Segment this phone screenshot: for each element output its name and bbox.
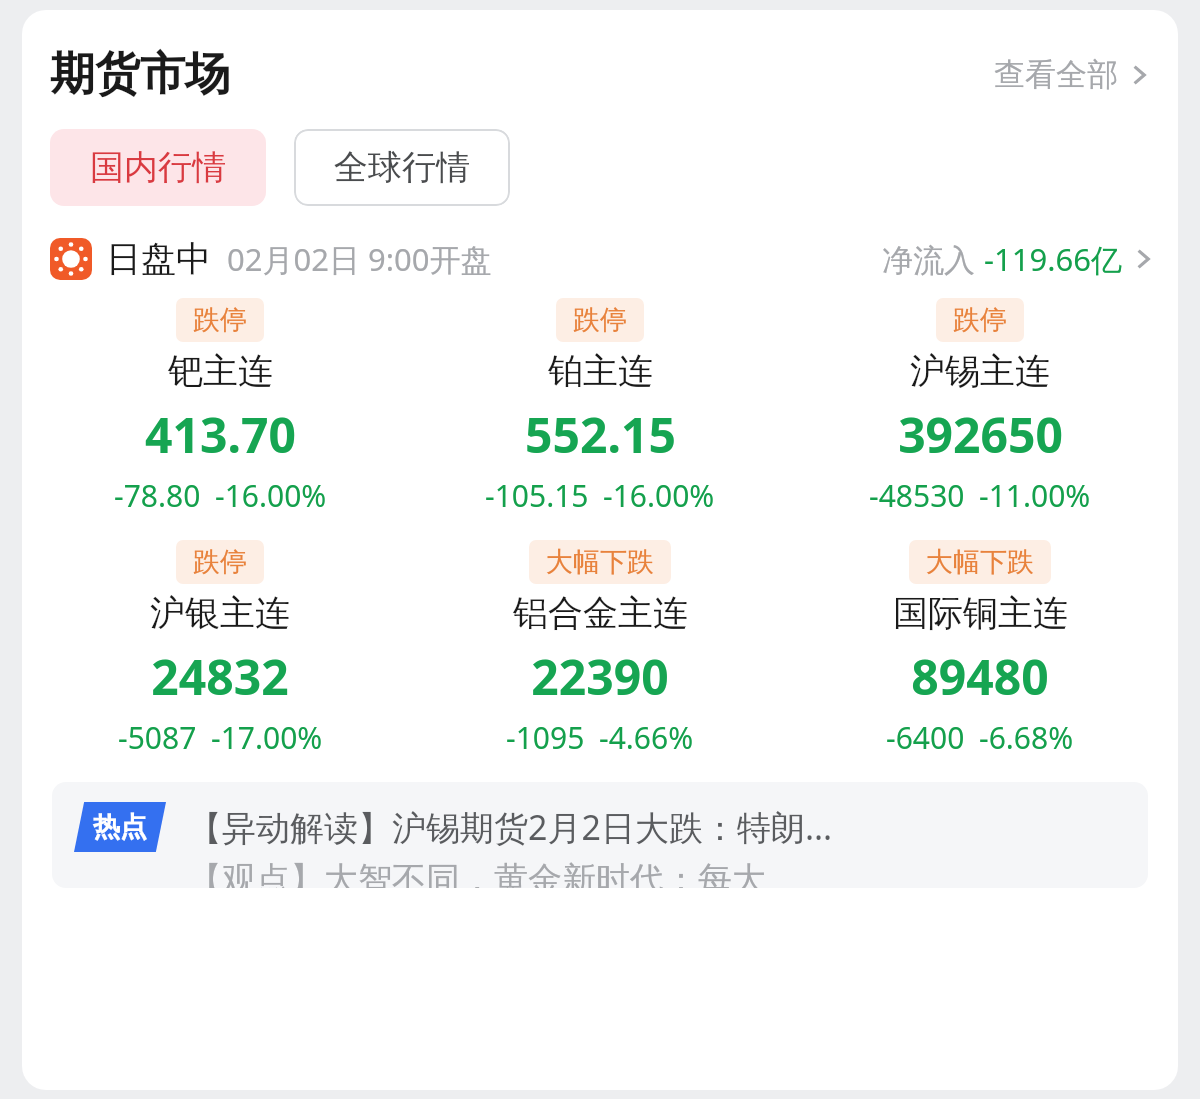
staticText: 89480 — [911, 644, 1049, 709]
staticText: 沪锡主连 — [910, 349, 1050, 393]
button[interactable]: 热点 — [52, 782, 1148, 888]
staticText: -1095 — [506, 717, 585, 758]
staticText: 跌停 — [193, 303, 247, 337]
staticText: 跌停 — [573, 303, 627, 337]
staticText: 22390 — [531, 644, 669, 709]
staticText: 392650 — [898, 402, 1063, 467]
staticText: 查看全部 — [994, 55, 1118, 94]
staticText: 期货市场 — [50, 46, 230, 103]
staticText: 【观点】大智不同，黄金新时代：每大 — [188, 858, 766, 888]
button[interactable]: 国内行情 — [50, 129, 266, 206]
staticText: -17.00% — [211, 717, 323, 758]
staticText: 国内行情 — [90, 146, 226, 189]
button[interactable]: 大幅下跌 — [790, 538, 1170, 760]
staticText: 净流入 — [882, 238, 984, 280]
staticText: -16.00% — [603, 475, 715, 516]
staticText: -105.15 — [485, 475, 589, 516]
staticText: 大幅下跌 — [546, 545, 654, 579]
staticText: -119.66亿 — [984, 238, 1122, 280]
staticText: 铝合金主连 — [513, 591, 688, 635]
staticText: 国际铜主连 — [893, 591, 1068, 635]
staticText: -5087 — [118, 717, 197, 758]
staticText: 大幅下跌 — [926, 545, 1034, 579]
staticText: 413.70 — [145, 402, 296, 467]
staticText: 热点 — [93, 810, 147, 844]
staticText: -6400 — [886, 717, 965, 758]
button[interactable]: 跌停 — [790, 296, 1170, 518]
staticText: 02月02日 9:00开盘 — [227, 238, 492, 280]
staticText: -6.68% — [979, 717, 1074, 758]
button[interactable]: 跌停 — [30, 296, 410, 518]
staticText: 跌停 — [193, 545, 247, 579]
staticText: -16.00% — [215, 475, 327, 516]
staticText: 钯主连 — [168, 349, 273, 393]
button[interactable]: 查看全部 — [990, 49, 1154, 100]
staticText: -78.80 — [114, 475, 201, 516]
staticText: -48530 — [869, 475, 965, 516]
staticText: 全球行情 — [334, 146, 470, 189]
staticText: 铂主连 — [548, 349, 653, 393]
staticText: 24832 — [151, 644, 289, 709]
staticText: 日盘中 — [106, 237, 211, 281]
staticText: -4.66% — [599, 717, 694, 758]
button[interactable]: 净流入 — [882, 234, 1154, 284]
staticText: 552.15 — [525, 402, 676, 467]
staticText: 跌停 — [953, 303, 1007, 337]
button[interactable]: 跌停 — [410, 296, 790, 518]
staticText: -11.00% — [979, 475, 1091, 516]
button[interactable]: 跌停 — [30, 538, 410, 760]
staticText: 【异动解读】沪锡期货2月2日大跌：特朗... — [188, 804, 833, 850]
button[interactable]: 大幅下跌 — [410, 538, 790, 760]
staticText: 沪银主连 — [150, 591, 290, 635]
button[interactable]: 全球行情 — [294, 129, 510, 206]
